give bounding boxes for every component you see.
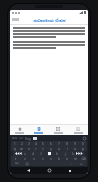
button[interactable]: ⌫ [79, 156, 87, 161]
staticText: l [81, 152, 82, 156]
staticText: m [74, 157, 77, 161]
button[interactable]: v [47, 156, 55, 161]
button[interactable]: z [20, 156, 29, 161]
button[interactable]: 5 [39, 141, 47, 146]
button[interactable]: g [45, 151, 53, 156]
button[interactable]: w [18, 146, 25, 151]
button[interactable]: ಅಂ [11, 161, 22, 166]
button[interactable]: k [69, 151, 77, 156]
button[interactable]: ⇧ [11, 156, 20, 161]
button[interactable]: a [13, 151, 21, 156]
button[interactable]: 2 [18, 141, 25, 146]
button[interactable]: 6 [47, 141, 55, 146]
staticText: ↵ [80, 162, 83, 166]
staticText: 4 [35, 142, 37, 146]
button[interactable]: 3 [25, 141, 32, 146]
button[interactable]: Eng [25, 137, 31, 141]
button[interactable]: o [71, 146, 79, 151]
button[interactable]: Home [47, 168, 52, 173]
button[interactable]: 4 [32, 141, 39, 146]
button[interactable]: Settings [83, 137, 86, 140]
button[interactable]: 0 [79, 141, 87, 146]
button[interactable]: n [63, 156, 71, 161]
button[interactable]: x [29, 156, 38, 161]
button[interactable]: c [38, 156, 47, 161]
button[interactable]: j [61, 151, 69, 156]
button[interactable]: 1 [11, 141, 18, 146]
staticText: 8 [66, 142, 68, 146]
staticText: ⌫ [81, 157, 86, 161]
button[interactable]: ☺ [22, 161, 31, 166]
staticText: d [32, 152, 34, 156]
button[interactable]: f [37, 151, 45, 156]
staticText: Eng [25, 137, 31, 141]
staticText: q [14, 147, 16, 151]
staticText: p [82, 147, 84, 151]
staticText: a [16, 152, 18, 156]
button[interactable]: m [71, 156, 79, 161]
button[interactable]: p [79, 146, 87, 151]
button[interactable]: ಹೆಚ್ಚು [68, 125, 88, 135]
button[interactable]: Next [76, 152, 83, 155]
button[interactable]: q [11, 146, 18, 151]
staticText: r [35, 147, 37, 151]
button[interactable]: ↵ [76, 161, 87, 166]
button[interactable]: ಸಿಎ [19, 137, 23, 140]
button[interactable]: y [47, 146, 55, 151]
staticText: n [66, 157, 68, 161]
button[interactable]: b [55, 156, 63, 161]
staticText: ☺ [25, 162, 29, 166]
button[interactable]: e [25, 146, 32, 151]
button[interactable]: t [39, 146, 47, 151]
staticText: ⇧ [14, 157, 17, 161]
button[interactable]: 8 [63, 141, 71, 146]
staticText: f [40, 152, 42, 156]
staticText: j [65, 152, 66, 156]
staticText: ಸಿಎ [19, 137, 23, 140]
button[interactable]: 9 [71, 141, 79, 146]
staticText: g [48, 152, 50, 156]
staticText: 3 [28, 142, 30, 146]
button[interactable]: l [77, 151, 85, 156]
button[interactable]: ಅಂಕ [12, 137, 17, 140]
staticText: t [42, 147, 44, 151]
button[interactable]: ಸುದ್ದಿ [29, 125, 48, 135]
button[interactable]: d [29, 151, 37, 156]
staticText: ಅಂ [15, 162, 19, 165]
staticText: 9 [74, 142, 76, 146]
button[interactable]: u [55, 146, 63, 151]
staticText: y [50, 147, 52, 151]
button[interactable]: s [21, 151, 29, 156]
staticText: 1 [14, 142, 16, 146]
button[interactable]: h [53, 151, 61, 156]
staticText: c [42, 157, 44, 161]
staticText: 7 [58, 142, 60, 146]
staticText: w [20, 147, 23, 151]
staticText: e [28, 147, 30, 151]
staticText: i [67, 147, 68, 151]
staticText: k [72, 152, 74, 156]
button[interactable]: i [63, 146, 71, 151]
button[interactable]: 7 [55, 141, 63, 146]
staticText: 5 [42, 142, 44, 146]
button[interactable]: Previous [15, 152, 22, 155]
button[interactable]: ವಿಭಾಗ [48, 125, 68, 135]
staticText: s [24, 152, 26, 156]
staticText: 0 [82, 142, 84, 146]
staticText: o [74, 147, 76, 151]
staticText: h [56, 152, 58, 156]
staticText: 2 [21, 142, 23, 146]
button[interactable]: Recents [67, 168, 72, 173]
button[interactable]: ಮುಖಪುಟ [10, 125, 29, 135]
staticText: b [58, 157, 60, 161]
staticText: z [24, 157, 26, 161]
staticText: v [50, 157, 52, 161]
button[interactable]: r [32, 146, 39, 151]
button[interactable]: Back [26, 168, 31, 173]
staticText: ಸಂಪಾದಕೀಯ ಲೇಖನ [33, 17, 66, 23]
